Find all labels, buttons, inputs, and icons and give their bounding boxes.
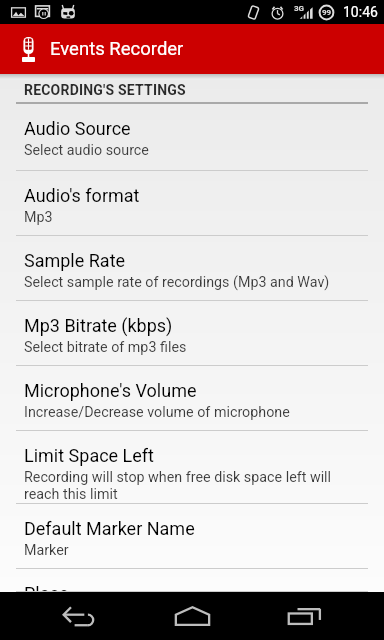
staticText: Increase/Decrease volume of microphone xyxy=(24,404,290,421)
button[interactable]: Limit Space Left xyxy=(0,431,384,504)
button[interactable]: Sample Rate xyxy=(0,236,384,301)
staticText: Audio Source xyxy=(24,118,131,139)
staticText: reach this limit xyxy=(24,486,118,503)
button[interactable]: Mp3 Bitrate (kbps) xyxy=(0,301,384,366)
staticText: Select audio source xyxy=(24,142,149,159)
button[interactable]: Back xyxy=(24,592,136,640)
staticText: Recording will stop when free disk space… xyxy=(24,469,332,486)
staticText: Mp3 xyxy=(24,209,53,226)
button[interactable]: Audio's format xyxy=(0,171,384,236)
button[interactable]: Microphone's Volume xyxy=(0,366,384,431)
staticText: Mp3 Bitrate (kbps) xyxy=(24,315,173,336)
staticText: Select sample rate of recordings (Mp3 an… xyxy=(24,274,330,291)
staticText: Events Recorder xyxy=(50,38,184,60)
staticText: Limit Space Left xyxy=(24,445,154,466)
staticText: Default Marker Name xyxy=(24,518,195,539)
staticText: Audio's format xyxy=(24,185,140,206)
button[interactable]: Audio Source xyxy=(0,104,384,171)
staticText: 99 xyxy=(322,8,332,17)
staticText: Microphone's Volume xyxy=(24,380,197,401)
staticText: Place xyxy=(24,583,69,592)
button[interactable]: Default Marker Name xyxy=(0,504,384,569)
staticText: 10:46 xyxy=(343,4,378,20)
staticText: Sample Rate xyxy=(24,250,126,271)
button[interactable]: Home xyxy=(136,592,248,640)
staticText: Select bitrate of mp3 files xyxy=(24,339,187,356)
staticText: 3G xyxy=(294,4,305,13)
staticText: RECORDING'S SETTINGS xyxy=(24,82,186,98)
button[interactable]: Place xyxy=(0,569,384,592)
staticText: Marker xyxy=(24,542,69,559)
button[interactable]: Recent apps xyxy=(248,592,360,640)
